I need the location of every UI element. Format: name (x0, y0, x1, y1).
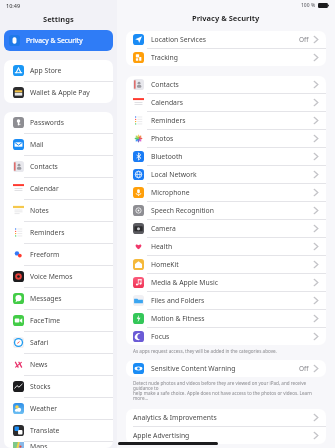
staticText: Maps (30, 442, 48, 448)
button[interactable]: Notes (4, 200, 113, 221)
button[interactable]: Weather (4, 398, 113, 419)
button[interactable]: Microphone (126, 184, 326, 201)
staticText: Photos (151, 134, 174, 143)
staticText: Privacy & Security (192, 13, 260, 23)
button[interactable]: Analytics & Improvements (126, 409, 326, 426)
button[interactable]: Calendars (126, 94, 326, 111)
button[interactable]: App Store (4, 60, 113, 81)
staticText: Focus (151, 332, 170, 341)
button[interactable]: Passwords (4, 112, 113, 133)
staticText: As apps request access, they will be add… (133, 348, 277, 354)
button[interactable]: Safari (4, 332, 113, 353)
staticText: News (30, 360, 48, 369)
staticText: Contacts (151, 80, 179, 89)
staticText: Messages (30, 294, 62, 303)
staticText: Camera (151, 224, 176, 233)
staticText: Translate (30, 426, 60, 435)
button[interactable]: Stocks (4, 376, 113, 397)
button[interactable]: FaceTime (4, 310, 113, 331)
button[interactable]: Health (126, 238, 326, 255)
staticText: Safari (30, 338, 49, 347)
staticText: Motion & Fitness (151, 314, 205, 323)
button[interactable]: Local Network (126, 166, 326, 183)
button[interactable]: Contacts (126, 76, 326, 93)
staticText: FaceTime (30, 316, 61, 325)
staticText: Reminders (151, 116, 186, 125)
button[interactable]: Photos (126, 130, 326, 147)
button[interactable]: Apple Advertising (126, 427, 326, 444)
staticText: 100 % (301, 2, 316, 9)
staticText: Files and Folders (151, 296, 205, 305)
button[interactable]: Camera (126, 220, 326, 237)
staticText: Weather (30, 404, 58, 413)
staticText: Sensitive Content Warning (151, 364, 236, 373)
staticText: Calendars (151, 98, 183, 107)
staticText: HomeKit (151, 260, 179, 269)
staticText: Speech Recognition (151, 206, 214, 215)
staticText: Bluetooth (151, 152, 183, 161)
button[interactable]: Maps (4, 442, 113, 448)
button[interactable]: Sensitive Content Warning (126, 360, 326, 377)
staticText: Privacy & Security (26, 36, 83, 45)
button[interactable]: Reminders (4, 222, 113, 243)
button[interactable]: HomeKit (126, 256, 326, 273)
staticText: Settings (43, 14, 74, 24)
button[interactable]: Voice Memos (4, 266, 113, 287)
staticText: Contacts (30, 162, 58, 171)
staticText: Reminders (30, 228, 65, 237)
button[interactable]: Focus (126, 328, 326, 345)
button[interactable]: Mail (4, 134, 113, 155)
staticText: Wallet & Apple Pay (30, 88, 90, 97)
staticText: Off (299, 364, 309, 373)
button[interactable]: Tracking (126, 49, 326, 66)
button[interactable]: Calendar (4, 178, 113, 199)
staticText: Notes (30, 206, 49, 215)
staticText: Passwords (30, 118, 64, 127)
button[interactable]: Wallet & Apple Pay (4, 82, 113, 103)
button[interactable]: Speech Recognition (126, 202, 326, 219)
staticText: Microphone (151, 188, 190, 197)
button[interactable]: Translate (4, 420, 113, 441)
staticText: Off (299, 35, 309, 44)
staticText: Apple Advertising (133, 431, 190, 440)
button[interactable]: Reminders (126, 112, 326, 129)
button[interactable]: Media & Apple Music (126, 274, 326, 291)
staticText: Voice Memos (30, 272, 73, 281)
staticText: Freeform (30, 250, 60, 259)
staticText: Detect nude photos and videos before the… (133, 380, 326, 401)
staticText: Local Network (151, 170, 197, 179)
button[interactable]: Motion & Fitness (126, 310, 326, 327)
staticText: 10:49 (6, 2, 21, 9)
staticText: Media & Apple Music (151, 278, 218, 287)
staticText: App Store (30, 66, 62, 75)
staticText: Health (151, 242, 173, 251)
button[interactable]: Files and Folders (126, 292, 326, 309)
staticText: Mail (30, 140, 44, 149)
staticText: Calendar (30, 184, 59, 193)
button[interactable]: Privacy & Security (4, 30, 113, 51)
button[interactable]: News (4, 354, 113, 375)
staticText: Stocks (30, 382, 51, 391)
button[interactable]: Contacts (4, 156, 113, 177)
staticText: Tracking (151, 53, 178, 62)
staticText: Location Services (151, 35, 206, 44)
button[interactable]: Messages (4, 288, 113, 309)
staticText: Analytics & Improvements (133, 413, 217, 422)
button[interactable]: Location Services (126, 31, 326, 48)
button[interactable]: Freeform (4, 244, 113, 265)
button[interactable]: Bluetooth (126, 148, 326, 165)
